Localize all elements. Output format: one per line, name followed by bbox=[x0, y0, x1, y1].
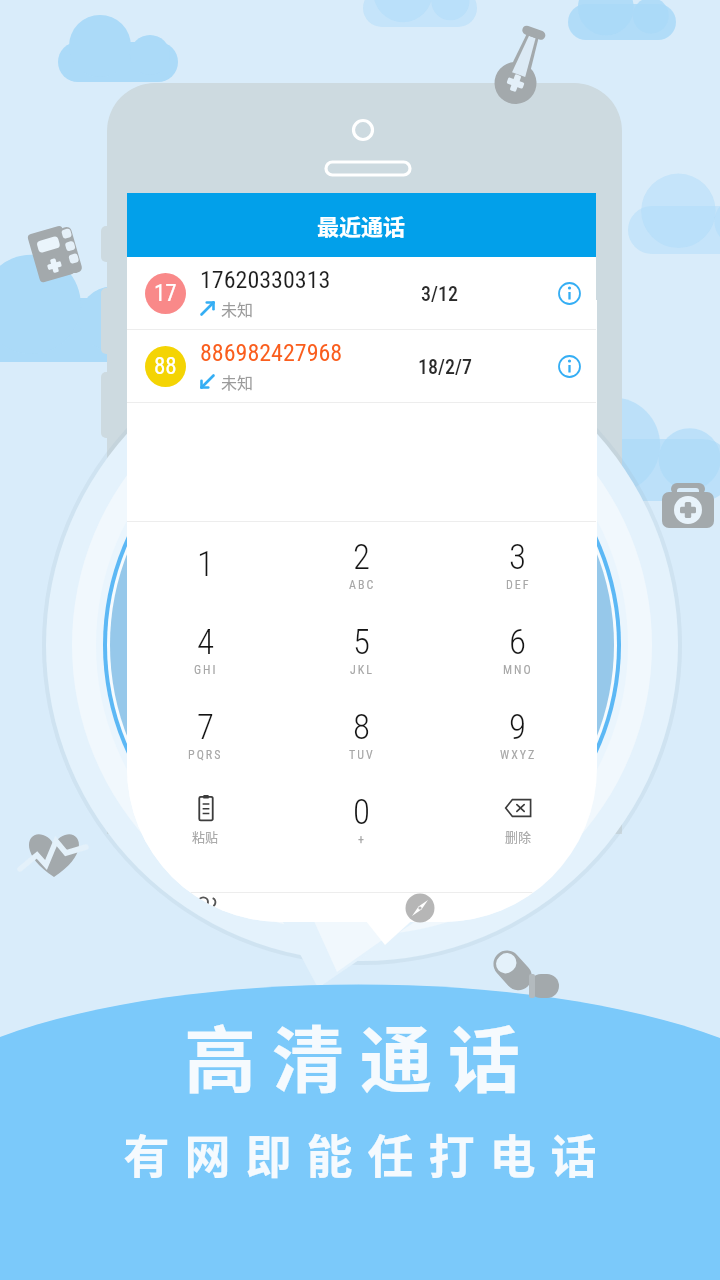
button[interactable]: Paste bbox=[127, 777, 284, 862]
button[interactable]: 6 bbox=[440, 607, 596, 692]
staticText: 4 bbox=[197, 622, 215, 663]
button[interactable]: 最近通话 bbox=[127, 193, 596, 257]
button[interactable]: 9 bbox=[440, 692, 596, 777]
staticText: 粘贴 bbox=[192, 827, 219, 846]
staticText: GHI bbox=[194, 663, 218, 677]
staticText: WXYZ bbox=[500, 748, 537, 762]
staticText: 17620330313 bbox=[200, 266, 331, 294]
staticText: 7 bbox=[197, 707, 215, 748]
button[interactable]: 88 bbox=[127, 330, 596, 402]
staticText: 高清通话 bbox=[184, 1002, 537, 1106]
staticText: ABC bbox=[349, 578, 376, 592]
staticText: 未知 bbox=[221, 297, 254, 320]
staticText: + bbox=[358, 833, 366, 847]
staticText: PQRS bbox=[188, 748, 223, 762]
button[interactable]: 2 bbox=[284, 522, 440, 607]
button[interactable]: Contacts bbox=[186, 893, 226, 922]
staticText: 2 bbox=[353, 537, 371, 578]
staticText: 3 bbox=[509, 537, 527, 578]
button[interactable]: Delete bbox=[440, 777, 596, 862]
staticText: 8 bbox=[353, 707, 371, 748]
staticText: 3/12 bbox=[421, 282, 458, 305]
button[interactable]: 1 bbox=[127, 522, 284, 607]
staticText: 18/2/7 bbox=[418, 355, 472, 378]
staticText: MNO bbox=[503, 663, 533, 677]
button[interactable]: 0 bbox=[284, 777, 440, 862]
staticText: 886982427968 bbox=[200, 339, 343, 367]
staticText: DEF bbox=[506, 578, 531, 592]
staticText: JKL bbox=[350, 663, 375, 677]
staticText: 6 bbox=[509, 622, 527, 663]
button[interactable]: 17 bbox=[127, 257, 596, 329]
button[interactable]: 8 bbox=[284, 692, 440, 777]
button[interactable]: 7 bbox=[127, 692, 284, 777]
staticText: TUV bbox=[349, 748, 375, 762]
button[interactable]: 3 bbox=[440, 522, 596, 607]
staticText: 9 bbox=[509, 707, 527, 748]
staticText: 未知 bbox=[221, 370, 254, 393]
staticText: 1 bbox=[197, 544, 215, 585]
button[interactable]: 4 bbox=[127, 607, 284, 692]
staticText: 88 bbox=[154, 353, 177, 380]
staticText: 删除 bbox=[505, 827, 532, 846]
staticText: 有网即能任打电话 bbox=[116, 1120, 604, 1187]
staticText: 17 bbox=[154, 280, 177, 307]
staticText: 0 bbox=[353, 792, 371, 833]
staticText: 最近通话 bbox=[317, 209, 406, 241]
button[interactable]: Call details bbox=[547, 271, 591, 315]
button[interactable]: 5 bbox=[284, 607, 440, 692]
button[interactable]: Call details bbox=[547, 344, 591, 388]
staticText: 5 bbox=[353, 622, 371, 663]
